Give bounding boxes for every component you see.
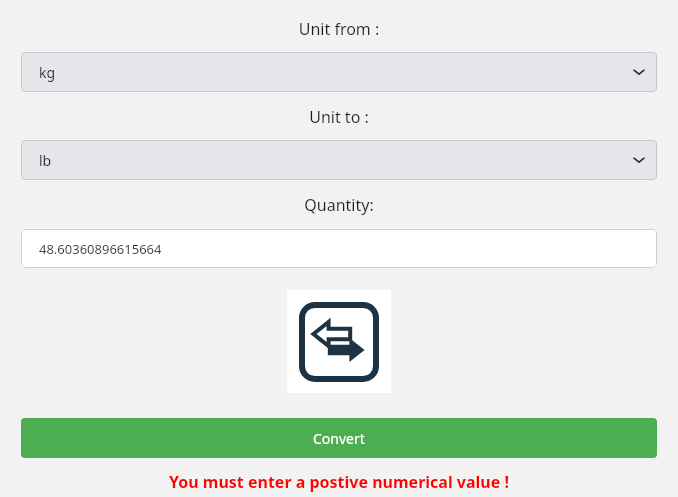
staticText: 48.60360896615664: [39, 240, 162, 258]
button[interactable]: kg: [21, 52, 657, 92]
staticText: Quantity:: [0, 194, 678, 216]
staticText: Unit to :: [0, 106, 678, 128]
button[interactable]: Convert: [21, 418, 657, 458]
button[interactable]: Swap units: [287, 290, 391, 393]
staticText: You must enter a postive numerical value…: [0, 471, 678, 493]
staticText: lb: [39, 151, 52, 170]
button[interactable]: 48.60360896615664: [21, 229, 657, 268]
staticText: kg: [39, 63, 56, 82]
staticText: Convert: [313, 429, 365, 448]
button[interactable]: lb: [21, 140, 657, 180]
staticText: Unit from :: [0, 18, 678, 40]
